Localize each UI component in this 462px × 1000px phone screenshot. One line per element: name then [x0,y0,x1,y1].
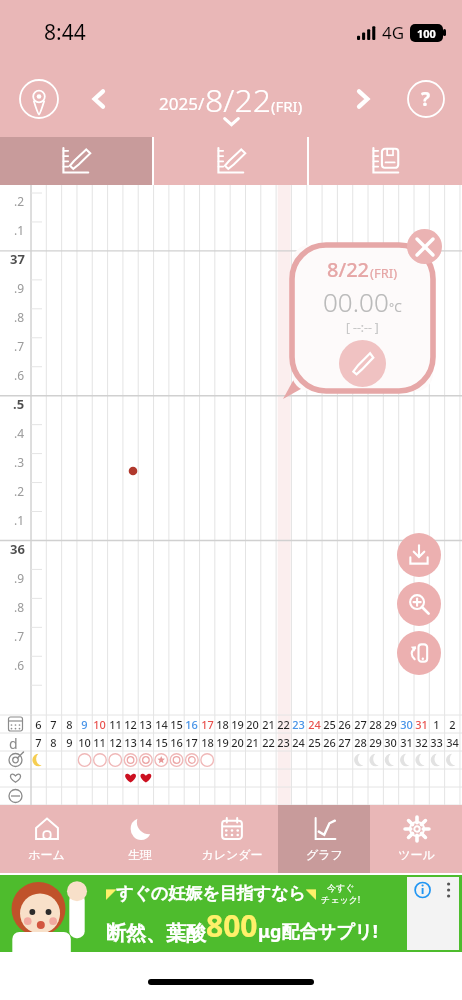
button[interactable]: ◤ [0,875,462,952]
button[interactable]: Download [397,533,441,577]
staticText: 7 [35,735,42,750]
button[interactable]: Rotate screen [397,631,441,675]
staticText: 13 [139,717,152,732]
staticText: 28 [369,717,382,732]
staticText: 26 [338,717,351,732]
staticText: 21 [262,717,275,732]
staticText: カレンダー [201,847,263,862]
button[interactable]: Chart view 1 [0,137,152,185]
staticText: .1 [14,512,25,528]
staticText: 13 [124,735,137,750]
staticText: 28 [354,735,367,750]
staticText: 15 [170,717,183,732]
button[interactable]: ツール [370,805,462,873]
staticText: 11 [109,717,122,732]
staticText: .5 [13,395,25,413]
staticText: ◥ [306,886,316,901]
staticText: (FRI) [271,96,303,116]
staticText: 21 [246,735,259,750]
staticText: 7 [50,717,57,732]
button[interactable]: グラフ [278,805,370,873]
staticText: 22 [277,717,290,732]
staticText: 15 [155,735,168,750]
staticText: 24 [308,717,321,732]
button[interactable]: Zoom in [397,582,441,626]
staticText: (FRI) [370,264,398,282]
staticText: 14 [155,717,168,732]
staticText: 27 [338,735,351,750]
button[interactable]: Chart view 2 [154,137,307,185]
staticText: 24 [292,735,305,750]
button[interactable]: ホーム [0,805,93,873]
staticText: 2 [449,717,456,732]
staticText: ? [421,86,431,112]
staticText: .3 [14,454,25,470]
staticText: 8 [50,735,57,750]
staticText: 今すぐ [327,882,355,893]
staticText: .9 [14,570,25,586]
staticText: .2 [14,483,25,499]
staticText: .7 [14,338,25,354]
staticText: 8 [66,717,73,732]
staticText: 00.00 [323,284,389,319]
button[interactable]: 2025/ [159,74,303,118]
staticText: 29 [384,717,397,732]
staticText: 9 [81,717,88,732]
staticText: .6 [14,657,25,673]
staticText: 31 [415,717,428,732]
staticText: 10 [78,735,91,750]
staticText: 生理 [128,847,152,862]
staticText: 12 [109,735,122,750]
staticText: 9 [66,735,73,750]
staticText: 19 [231,717,244,732]
staticText: 16 [185,717,198,732]
staticText: 31 [400,735,413,750]
button[interactable]: Location [18,78,60,120]
button[interactable]: 生理 [93,805,186,873]
staticText: 100 [417,26,436,41]
button[interactable]: Next day [340,76,386,122]
staticText: .6 [14,367,25,383]
staticText: ◤ [106,886,116,901]
staticText: 16 [170,735,183,750]
staticText: 18 [216,717,229,732]
staticText: 26 [323,735,336,750]
staticText: 14 [139,735,152,750]
staticText: .8 [14,599,25,615]
button[interactable]: カレンダー [186,805,278,873]
staticText: グラフ [306,847,343,862]
staticText: °C [389,299,402,315]
staticText: 20 [231,735,244,750]
staticText: 800 [206,905,258,946]
staticText: 19 [216,735,229,750]
staticText: 32 [415,735,428,750]
staticText: 2025/ [159,92,205,115]
button[interactable]: Previous day [76,76,122,122]
staticText: 20 [246,717,259,732]
button[interactable]: Chart view 3 [309,137,462,185]
staticText: .9 [14,280,25,296]
staticText: 17 [201,717,214,732]
staticText: 36 [10,540,25,558]
button[interactable]: Close [407,229,442,264]
staticText: 33 [430,735,443,750]
staticText: 23 [292,717,305,732]
staticText: 断然、葉酸 [106,921,206,946]
staticText: 22 [262,735,275,750]
staticText: ホーム [28,847,65,862]
staticText: .8 [14,309,25,325]
staticText: .7 [14,628,25,644]
button[interactable]: Help [406,79,446,119]
staticText: .2 [14,193,25,209]
staticText: μg配合サプリ! [258,919,378,944]
staticText: 8:44 [44,18,86,47]
staticText: 8/22 [205,78,271,122]
staticText: 18 [201,735,214,750]
staticText: 12 [124,717,137,732]
staticText: 17 [185,735,198,750]
staticText: 11 [93,735,106,750]
button[interactable] [292,245,433,391]
staticText: 10 [93,717,106,732]
button[interactable]: Record temperature [339,340,386,387]
staticText: 37 [10,250,25,268]
